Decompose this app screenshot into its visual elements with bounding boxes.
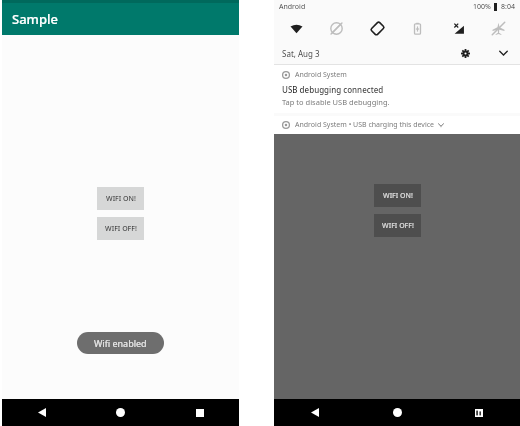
staticText: Android System [295,70,347,80]
button[interactable]: Android System [274,65,520,113]
staticText: WIFI OFF! [382,221,414,231]
button[interactable]: Home [81,399,160,426]
button[interactable]: Wifi enabled [77,332,164,354]
button[interactable]: Wi-Fi [286,17,306,39]
button[interactable]: Airplane mode [488,17,508,39]
button[interactable]: Settings [457,45,473,61]
button[interactable]: Auto-rotate [367,17,387,39]
staticText: WIFI ON! [106,194,136,204]
button[interactable]: Do not disturb [326,17,346,39]
button[interactable]: Recent apps [438,399,520,426]
button[interactable]: Recent apps [160,399,239,426]
button[interactable]: Back [274,399,356,426]
staticText: WIFI OFF! [105,224,137,234]
staticText: Sample [12,10,58,28]
button[interactable]: Mobile data [448,17,468,39]
button[interactable]: WIFI OFF! [97,217,144,240]
button[interactable]: WIFI ON! [97,187,144,210]
staticText: Android System • USB charging this devic… [295,120,435,130]
button[interactable]: WIFI ON! [374,184,421,207]
button[interactable]: WIFI OFF! [374,214,421,237]
button[interactable]: Home [356,399,438,426]
staticText: 100% [473,2,491,12]
staticText: 8:04 [501,2,515,12]
staticText: Tap to disable USB debugging. [282,97,390,107]
staticText: WIFI ON! [383,191,413,201]
staticText: Sat, Aug 3 [282,48,320,59]
staticText: Wifi enabled [94,337,147,349]
staticText: USB debugging connected [282,84,384,95]
button[interactable]: Android System • USB charging this devic… [274,116,520,134]
staticText: Android [279,2,306,12]
button[interactable]: Expand [495,45,511,61]
button[interactable]: Back [2,399,81,426]
button[interactable]: Battery saver [407,17,427,39]
